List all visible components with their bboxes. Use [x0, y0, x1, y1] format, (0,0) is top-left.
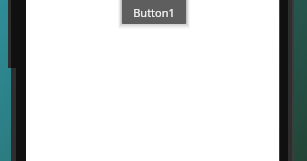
button[interactable]: Button1 — [122, 0, 186, 24]
staticText: Button1 — [133, 5, 175, 20]
